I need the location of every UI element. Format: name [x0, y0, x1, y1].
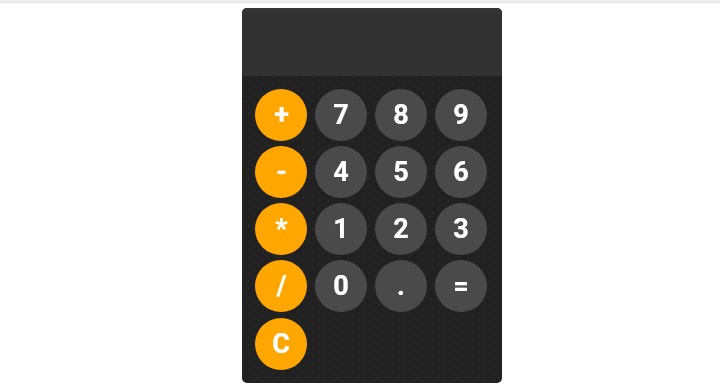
button[interactable]: Plus	[255, 89, 307, 141]
staticText: 4	[333, 156, 349, 188]
button[interactable]: 7	[315, 89, 367, 141]
staticText: 8	[393, 99, 409, 131]
staticText: 7	[333, 99, 349, 131]
button[interactable]: Divide	[255, 260, 307, 312]
button[interactable]: Multiply	[255, 203, 307, 255]
button[interactable]: 4	[315, 146, 367, 198]
button[interactable]: 9	[435, 89, 487, 141]
staticText: 5	[393, 156, 409, 188]
staticText: /	[276, 270, 287, 302]
staticText: *	[275, 213, 288, 245]
button[interactable]: 6	[435, 146, 487, 198]
staticText: 3	[453, 213, 469, 245]
button[interactable]: 2	[375, 203, 427, 255]
button[interactable]: 1	[315, 203, 367, 255]
staticText: +	[274, 99, 289, 131]
button[interactable]: Equals	[435, 260, 487, 312]
staticText: -	[276, 156, 287, 188]
button[interactable]: 3	[435, 203, 487, 255]
button[interactable]: Minus	[255, 146, 307, 198]
staticText: 2	[393, 213, 409, 245]
button[interactable]: 5	[375, 146, 427, 198]
button[interactable]: Decimal point	[375, 260, 427, 312]
staticText: .	[397, 270, 405, 302]
button[interactable]: 0	[315, 260, 367, 312]
staticText: C	[272, 328, 290, 360]
button[interactable]: 8	[375, 89, 427, 141]
staticText: 6	[453, 156, 469, 188]
staticText: 1	[333, 213, 349, 245]
staticText: 9	[453, 99, 469, 131]
staticText: 0	[333, 270, 349, 302]
button[interactable]: Clear	[255, 318, 307, 370]
staticText: =	[453, 270, 469, 302]
